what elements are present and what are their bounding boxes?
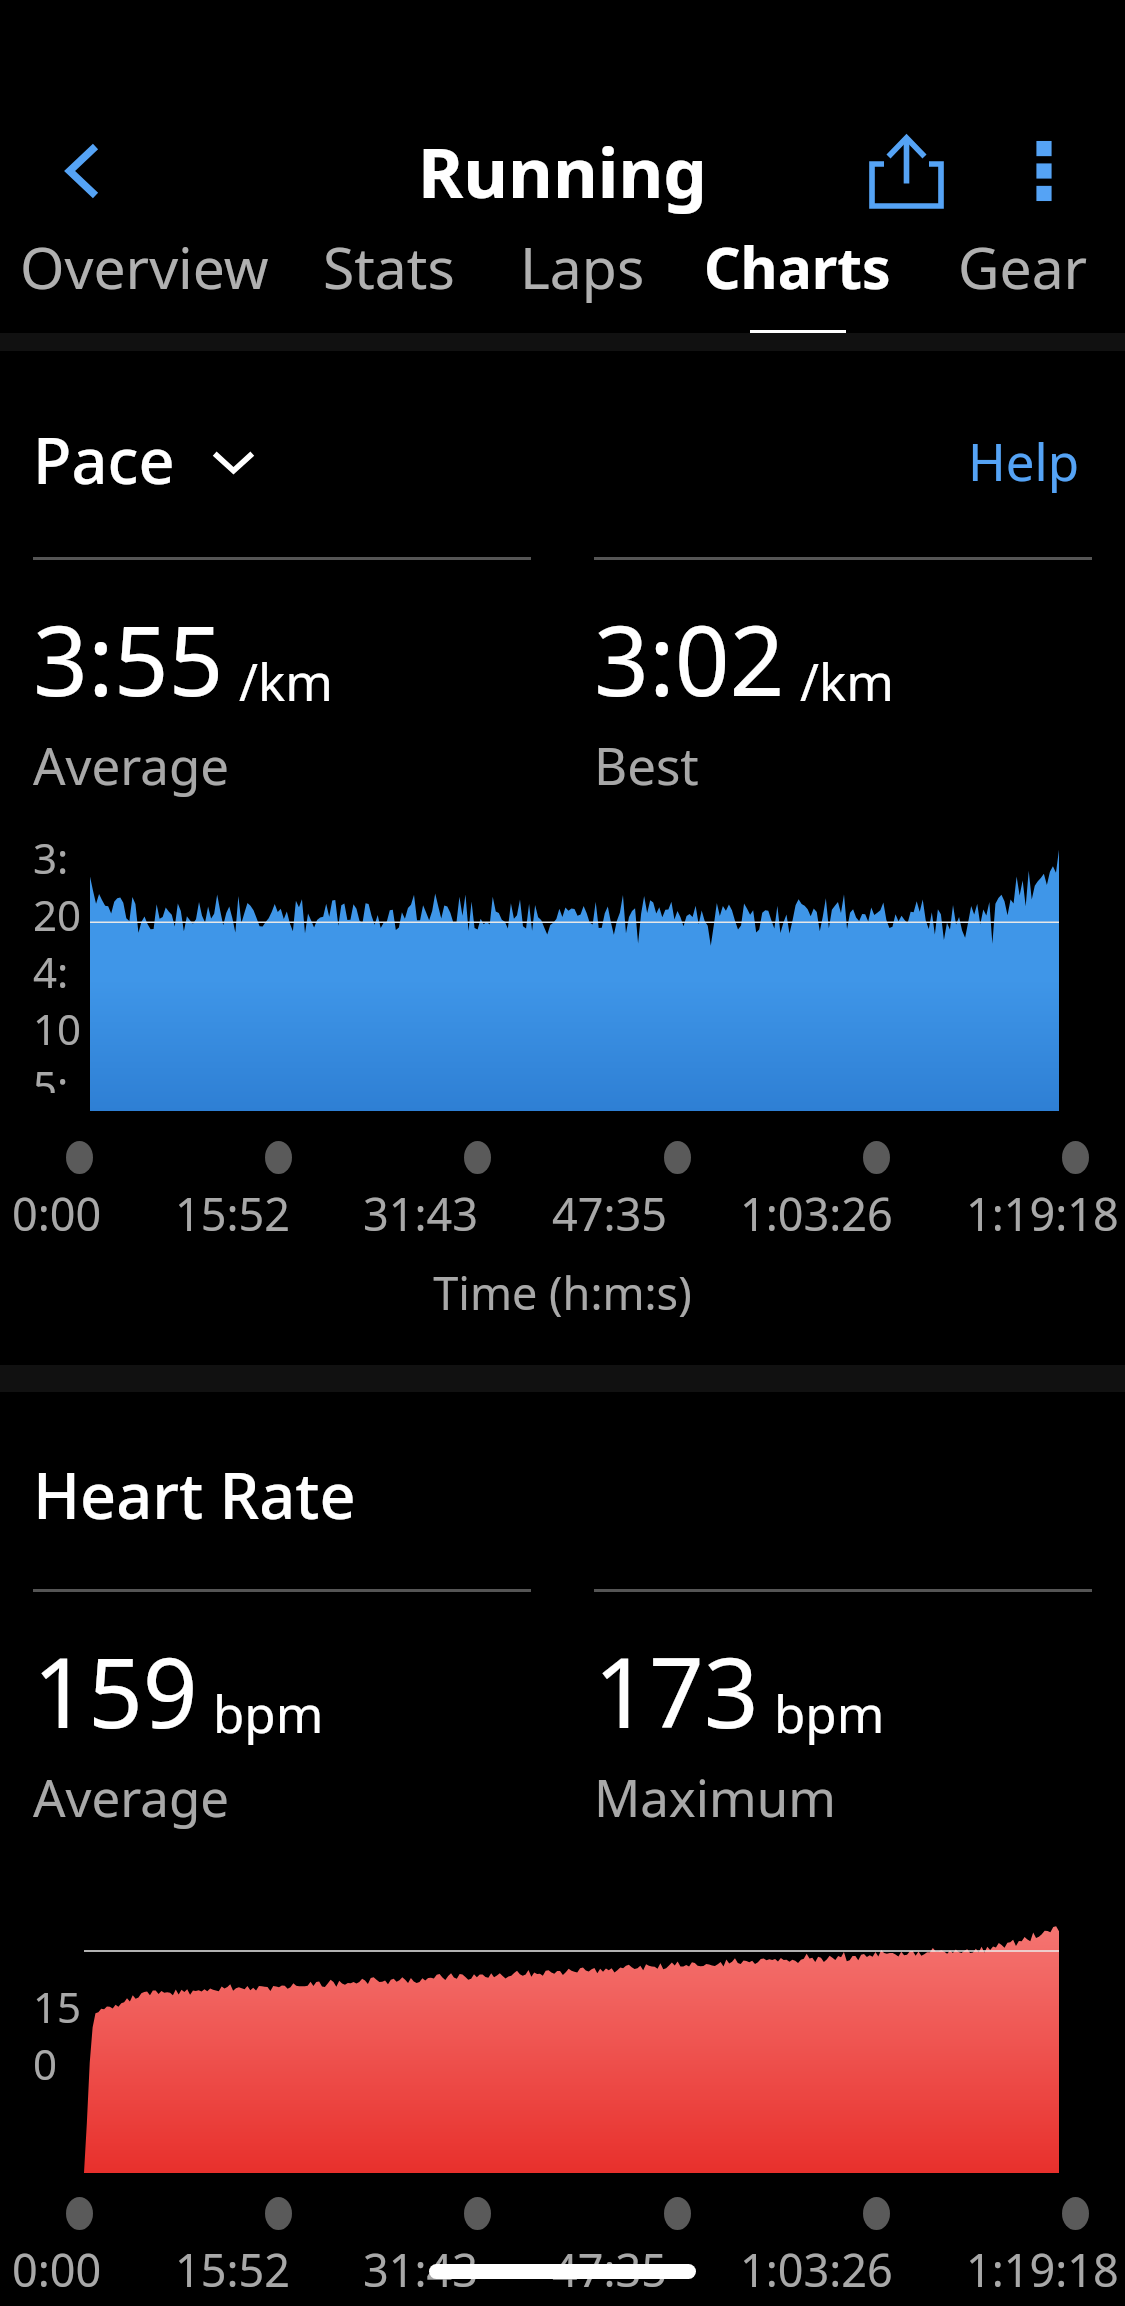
staticText: 31:43 (363, 1183, 479, 1244)
button[interactable]: Gear (920, 228, 1125, 333)
staticText: Heart Rate (33, 1452, 356, 1538)
staticText: Pace (33, 417, 175, 503)
staticText: 173 (594, 1625, 759, 1756)
staticText: bpm (774, 1678, 885, 1747)
button[interactable]: Heart Rate (33, 1446, 356, 1544)
staticText: Laps (520, 228, 645, 306)
button[interactable]: More options (975, 114, 1113, 228)
staticText: 1:03:26 (740, 1183, 893, 1244)
staticText: /km (800, 646, 894, 715)
staticText: Charts (704, 228, 891, 306)
button[interactable]: Overview (0, 228, 288, 333)
staticText: Help (968, 426, 1080, 495)
staticText: Best (594, 730, 699, 799)
staticText: Maximum (594, 1762, 836, 1831)
staticText: 1:19:18 (966, 2239, 1119, 2300)
staticText: 5:00 (33, 1057, 90, 1093)
staticText: Stats (323, 228, 455, 306)
staticText: 0:00 (12, 2239, 102, 2300)
staticText: 3:20 (33, 829, 90, 943)
staticText: 4:10 (33, 943, 90, 1057)
staticText: Running (418, 124, 707, 218)
staticText: 1:19:18 (966, 1183, 1119, 1244)
staticText: 3:02 (594, 593, 785, 724)
staticText: Average (33, 1762, 230, 1831)
staticText: 3:55 (33, 593, 224, 724)
button[interactable]: Charts (675, 228, 920, 333)
staticText: Time (h:m:s) (0, 1262, 1125, 1323)
staticText: bpm (213, 1678, 324, 1747)
button[interactable]: Pace (33, 405, 262, 515)
staticText: Gear (958, 228, 1088, 306)
staticText: 47:35 (552, 2239, 668, 2300)
staticText: 0:00 (12, 1183, 102, 1244)
staticText: Average (33, 730, 230, 799)
staticText: 100 (33, 2170, 90, 2173)
staticText: 159 (33, 1625, 198, 1756)
staticText: Overview (20, 228, 269, 306)
staticText: /km (239, 646, 333, 715)
staticText: 31:43 (363, 2239, 479, 2300)
button[interactable]: Laps (489, 228, 675, 333)
button[interactable]: Help (956, 414, 1092, 507)
button[interactable]: Back (18, 114, 150, 228)
staticText: 15:52 (175, 2239, 291, 2300)
staticText: 1:03:26 (740, 2239, 893, 2300)
staticText: 150 (33, 1978, 90, 2092)
staticText: 47:35 (552, 1183, 668, 1244)
button[interactable]: Stats (288, 228, 489, 333)
staticText: 15:52 (175, 1183, 291, 1244)
button[interactable]: Share (837, 114, 975, 228)
